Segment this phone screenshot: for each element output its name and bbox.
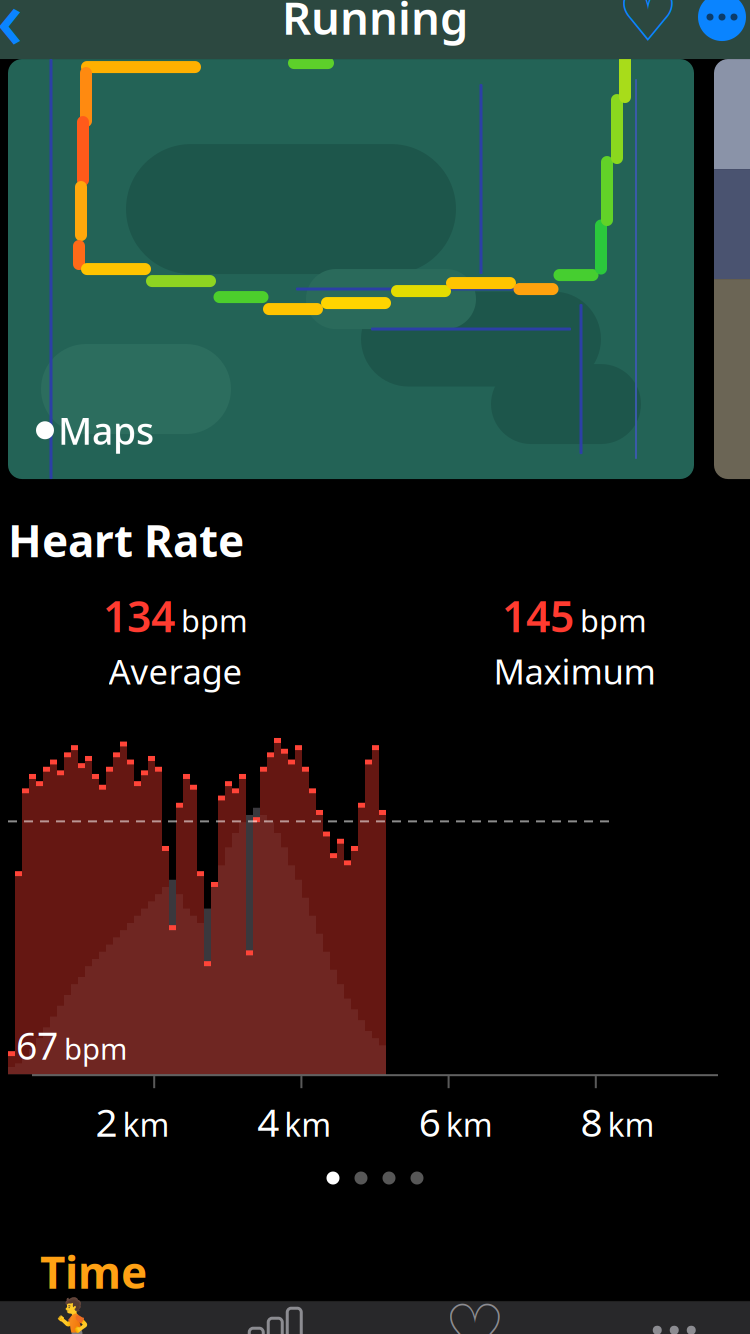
staticText: 134 — [103, 587, 175, 644]
staticText: 4 — [257, 1096, 279, 1147]
staticText: 2 — [96, 1096, 118, 1147]
staticText: km — [607, 1103, 654, 1146]
button[interactable]: Statistics — [175, 1298, 375, 1334]
staticText: km — [123, 1103, 170, 1146]
button[interactable]: ♡ — [375, 1298, 574, 1334]
staticText: Maps — [58, 405, 154, 455]
button[interactable]: Back — [0, 0, 30, 46]
staticText: km — [284, 1103, 331, 1146]
staticText: 145 — [502, 587, 574, 644]
staticText: bpm — [181, 600, 248, 641]
staticText: km — [446, 1103, 493, 1146]
staticText: bpm — [580, 600, 647, 641]
staticText: ‹ — [0, 0, 23, 72]
button[interactable]: Favourite — [608, 0, 688, 43]
staticText: 6 — [419, 1096, 441, 1147]
staticText: Running — [282, 0, 468, 47]
staticText: Average — [108, 648, 242, 694]
staticText: bpm — [64, 1029, 127, 1068]
staticText: 67 — [16, 1021, 58, 1070]
button[interactable]: 🏃 — [0, 1298, 175, 1334]
staticText: 🏃 — [39, 1297, 112, 1334]
staticText: ♡ — [617, 0, 679, 56]
button[interactable]: More options — [688, 0, 750, 41]
staticText: Time — [40, 1242, 147, 1301]
staticText: ♡ — [444, 1291, 506, 1334]
staticText: 8 — [580, 1096, 602, 1147]
button[interactable]: More — [574, 1298, 750, 1334]
staticText: Maximum — [493, 648, 655, 694]
staticText: Heart Rate — [8, 511, 244, 569]
